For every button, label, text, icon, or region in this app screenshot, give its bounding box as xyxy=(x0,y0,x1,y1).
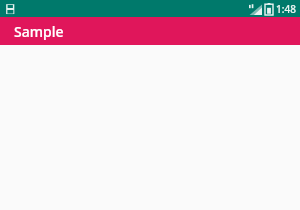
other: Notification xyxy=(4,3,16,15)
other: Battery xyxy=(265,3,273,15)
button[interactable]: Sample xyxy=(0,17,300,45)
staticText: 1:48 xyxy=(276,2,296,16)
staticText: Sample xyxy=(14,22,64,41)
other: Mobile signal xyxy=(249,4,262,15)
